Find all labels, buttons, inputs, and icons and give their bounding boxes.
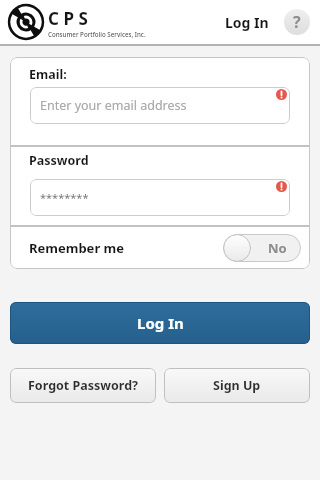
staticText: Consumer Portfolio Services, Inc.: [48, 30, 146, 38]
staticText: CPS: [48, 7, 93, 30]
staticText: Password: [29, 152, 89, 169]
button[interactable]: Log In: [10, 302, 310, 344]
staticText: ?: [293, 11, 301, 33]
staticText: Email:: [29, 66, 67, 83]
staticText: Sign Up: [213, 377, 261, 394]
staticText: Enter your email address: [40, 97, 187, 114]
button[interactable]: Enter your email address: [30, 87, 290, 124]
staticText: No: [268, 239, 287, 257]
staticText: Log In: [137, 313, 184, 333]
button[interactable]: Sign Up: [164, 368, 310, 403]
button[interactable]: ?: [284, 9, 310, 35]
button[interactable]: No: [223, 234, 301, 262]
button[interactable]: Forgot Password?: [10, 368, 156, 403]
button[interactable]: Remember me: [10, 227, 310, 269]
button[interactable]: Log In: [225, 13, 269, 32]
staticText: Forgot Password?: [28, 377, 139, 394]
staticText: Remember me: [29, 239, 125, 257]
button[interactable]: ********: [30, 179, 290, 216]
staticText: ********: [40, 190, 89, 205]
staticText: Log In: [225, 13, 269, 32]
